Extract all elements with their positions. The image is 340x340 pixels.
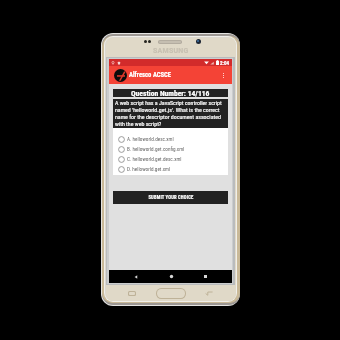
staticText: D. helloworld.get.xml xyxy=(127,166,171,172)
button[interactable]: B. helloworld.get.config.xml xyxy=(113,144,228,154)
button[interactable]: Home xyxy=(163,270,179,283)
button[interactable]: Back xyxy=(128,270,144,283)
button[interactable]: SUBMIT YOUR CHOICE xyxy=(113,191,228,204)
staticText: A. helloworld.desc.xml xyxy=(127,136,174,142)
button[interactable]: D. helloworld.get.xml xyxy=(113,164,228,174)
button[interactable]: More options xyxy=(217,69,230,82)
button[interactable]: Recent apps xyxy=(197,270,213,283)
staticText: B. helloworld.get.config.xml xyxy=(127,146,185,152)
staticText: Alfresco ACSCE xyxy=(129,71,172,79)
staticText: 2:04 xyxy=(220,60,229,66)
button[interactable]: A. helloworld.desc.xml xyxy=(113,134,228,144)
staticText: SAMSUNG xyxy=(153,47,189,55)
staticText: Question Number: 14/116 xyxy=(131,89,210,97)
staticText: C. helloworld.get.desc.xml xyxy=(127,156,182,162)
staticText: A web script has a JavaScript controller… xyxy=(115,100,227,128)
staticText: SUBMIT YOUR CHOICE xyxy=(148,195,194,200)
button[interactable]: C. helloworld.get.desc.xml xyxy=(113,154,228,164)
